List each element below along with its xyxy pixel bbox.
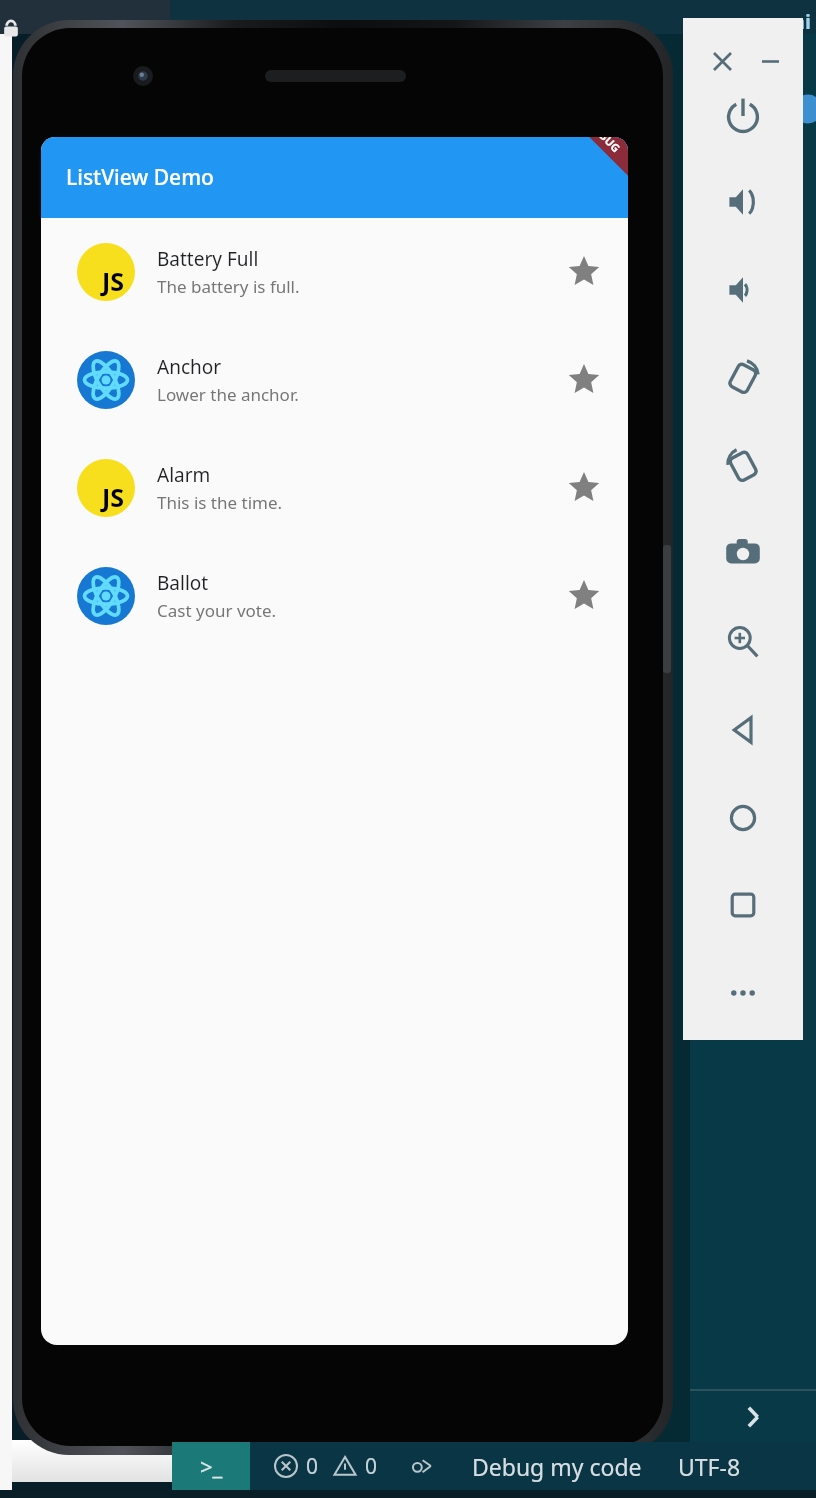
staticText: The battery is full. [157,275,300,298]
button[interactable]: Overview [714,876,772,934]
button[interactable]: Zoom [714,613,772,671]
button[interactable]: JS [41,434,628,542]
staticText: JS [102,264,125,298]
button[interactable]: Screenshot [714,524,772,582]
staticText: 0 [365,1452,378,1481]
staticText: >_ [200,1451,223,1481]
button[interactable]: Home [714,789,772,847]
button[interactable]: Ballot [41,542,628,650]
button[interactable]: Volume down [714,261,772,319]
button[interactable]: Close [705,44,739,78]
staticText: Anchor [157,354,222,380]
staticText: UTF-8 [678,1451,741,1482]
button[interactable]: Expand [690,1393,816,1441]
button[interactable]: Rotate right [714,437,772,495]
staticText: ai [793,8,811,35]
button[interactable]: Minimize [753,44,787,78]
button[interactable]: More [714,964,772,1022]
staticText: B [717,371,730,397]
button[interactable]: Favorite Anchor [558,354,610,406]
staticText: This is the time. [157,491,283,514]
button[interactable]: Terminal [172,1442,250,1490]
staticText: Battery Full [157,246,259,272]
button[interactable]: JS [41,218,628,326]
staticText: ListView Demo [66,163,214,192]
button[interactable]: Favorite Alarm [558,462,610,514]
staticText: Lower the anchor. [157,383,299,406]
staticText: Alarm [157,462,211,488]
staticText: Cast your vote. [157,599,277,622]
staticText: DEBUG [586,137,624,155]
button[interactable]: Favorite Battery Full [558,246,610,298]
button[interactable]: Favorite Ballot [558,570,610,622]
staticText: 0 [306,1452,319,1481]
button[interactable]: Rotate left [714,349,772,407]
button[interactable]: Debug my code [472,1451,642,1482]
staticText: Ballot [157,570,209,596]
button[interactable]: Back [714,701,772,759]
staticText: JS [102,480,125,514]
button[interactable]: Anchor [41,326,628,434]
button[interactable]: Volume up [714,173,772,231]
button[interactable]: Power [714,85,772,143]
